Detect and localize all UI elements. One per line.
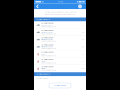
button[interactable]: Lorem ipsum dolor <box>34 58 86 65</box>
button[interactable]: Lorem ipsum dolor <box>34 21 86 29</box>
staticText: adipiscing elit sed do eiu <box>41 33 56 35</box>
staticText: Lorem ipsum dolor sit <box>36 73 50 75</box>
staticText: adipiscing elit sed do eiu <box>41 40 56 42</box>
staticText: Sit amet <box>41 53 45 55</box>
button[interactable]: Account <box>75 4 86 9</box>
staticText: 12:30 <box>80 24 84 26</box>
button[interactable]: Lorem ipsum dolor <box>49 83 71 88</box>
button[interactable]: Lorem ipsum dolor <box>34 65 86 72</box>
staticText: 12:30 <box>80 31 84 33</box>
button[interactable]: Lorem ipsum dolor <box>34 29 86 36</box>
staticText: adipiscing elit sed do eiu <box>41 48 56 49</box>
staticText: adipiscing elit sed do eiu <box>41 26 56 28</box>
staticText: Lorem ipsum dolor sit <box>36 19 50 20</box>
staticText: Lorem ipsum dolor <box>53 85 66 86</box>
staticText: Lorem ipsum dolor <box>41 59 54 60</box>
staticText: Sit amet consectet <box>41 39 52 40</box>
staticText: Sit amet <box>41 60 45 62</box>
staticText: 9:41 AM <box>58 1 63 3</box>
staticText: Lorem ipsum dolor <box>41 66 54 68</box>
staticText: Lorem ipsum dolor <box>36 78 49 79</box>
staticText: adipiscing elit sed do eiu <box>41 55 56 57</box>
staticText: Lorem ipsum dolor <box>41 22 54 24</box>
staticText: 12:30 <box>80 68 84 69</box>
staticText: adipiscing elit sed do eiu <box>41 69 56 71</box>
staticText: 12:30 <box>80 60 84 62</box>
button[interactable]: Lorem ipsum dolor <box>34 43 86 50</box>
button[interactable]: Back <box>34 4 42 9</box>
staticText: Sit amet consectet <box>41 46 52 48</box>
staticText: Sit amet <box>41 68 45 69</box>
staticText: Lorem ipsum dolor <box>41 30 54 31</box>
staticText: Lorem ipsum dolor <box>41 37 54 39</box>
staticText: 12:30 <box>80 39 84 40</box>
button[interactable]: Lorem ipsum dolor <box>34 50 86 58</box>
staticText: Lorem ipsum dolor <box>41 44 54 46</box>
staticText: Sit amet consectet <box>41 24 52 26</box>
staticText: 12:30 <box>80 53 84 55</box>
staticText: Sit amet consectet <box>41 31 52 33</box>
staticText: 12:30 <box>80 46 84 48</box>
staticText: elit sed do eiusmod tempor incididunt ut… <box>45 14 75 15</box>
button[interactable]: Lorem ipsum dolor <box>34 36 86 43</box>
staticText: Lorem ipsum dolor sit amet consectetur a… <box>43 11 76 13</box>
staticText: adipiscing elit sed do eiu <box>41 62 56 64</box>
staticText: Lorem ipsum dolor <box>41 51 54 53</box>
